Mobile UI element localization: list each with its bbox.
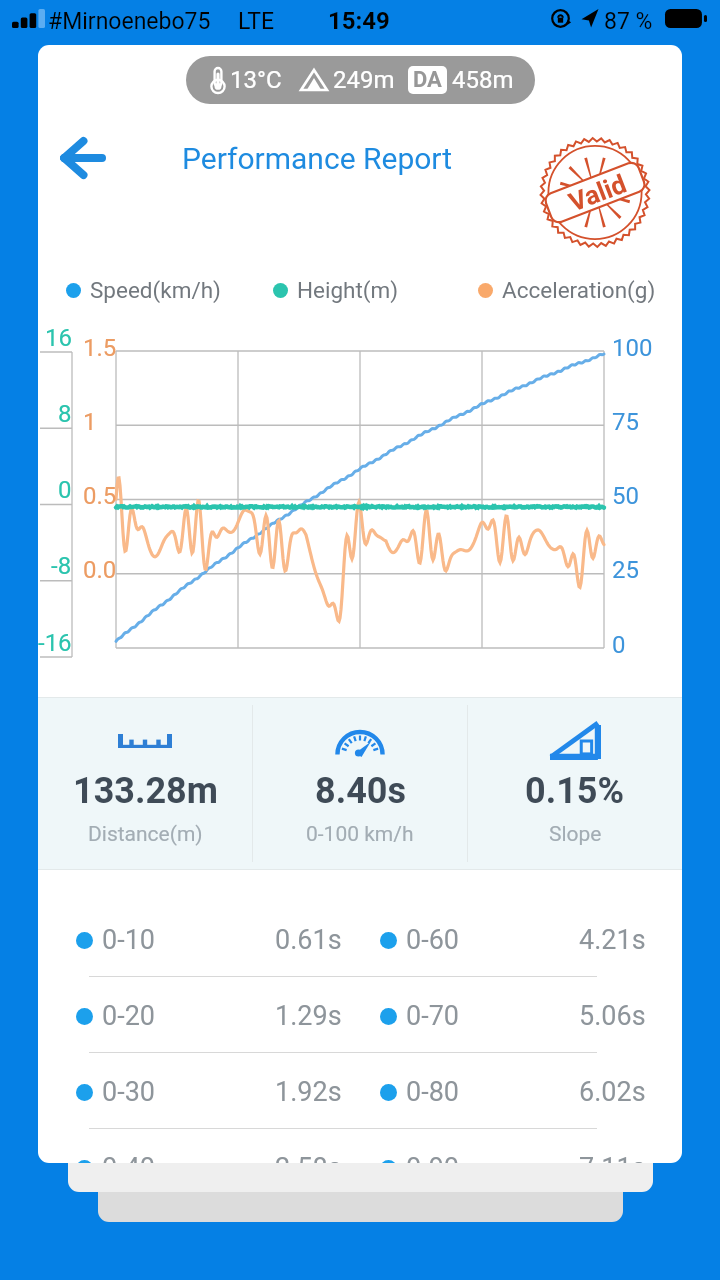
staticText: 13°C [230,66,282,94]
button[interactable]: 0-30 [68,1064,350,1120]
staticText: 0.61s [275,924,342,956]
staticText: 2.58s [275,1152,342,1163]
button[interactable]: 133.28m [38,697,252,870]
staticText: 25 [612,556,639,584]
staticText: 1.5 [83,334,117,362]
staticText: Distance(m) [88,822,203,847]
button[interactable]: 0-60 [372,912,654,968]
staticText: -16 [38,629,72,657]
staticText: DA [413,67,442,93]
staticText: 0-30 [102,1076,155,1108]
staticText: 0-80 [406,1076,459,1108]
button[interactable]: Acceleration(g) [478,275,656,305]
staticText: 75 [612,408,639,436]
button[interactable]: 0-40 [68,1140,350,1163]
button[interactable]: Height(m) [273,275,399,305]
staticText: 249m [333,66,395,94]
button[interactable]: Back [42,128,124,188]
staticText: 0-70 [406,1000,459,1032]
staticText: 1.29s [275,1000,342,1032]
staticText: 5.06s [579,1000,646,1032]
staticText: 0-20 [102,1000,155,1032]
button[interactable]: 0.15% [468,697,682,870]
staticText: 0 [58,476,72,504]
staticText: 0-100 km/h [306,822,414,847]
button[interactable]: 0-90 [372,1140,654,1163]
staticText: LTE [238,8,275,35]
staticText: 0.5 [83,482,117,510]
button[interactable]: Speed(km/h) [66,275,221,305]
staticText: 7.11s [579,1152,646,1163]
staticText: 50 [612,482,639,510]
other: Rotation lock [551,9,570,28]
staticText: 0-10 [102,924,155,956]
staticText: 0.0 [83,556,117,584]
staticText: 0 [612,631,626,659]
staticText: Speed(km/h) [90,277,221,303]
staticText: 1 [83,408,97,436]
button[interactable]: 0-80 [372,1064,654,1120]
staticText: 8.40s [315,770,406,812]
staticText: Performance Report [182,141,453,176]
staticText: 1.92s [275,1076,342,1108]
button[interactable]: 0-20 [68,988,350,1044]
staticText: 458m [452,66,514,94]
staticText: 133.28m [73,770,218,812]
staticText: Valid [565,168,630,218]
staticText: 100 [612,334,653,362]
staticText: #Mirnoenebo75 [48,8,211,35]
staticText: 8 [58,400,72,428]
staticText: 0-90 [406,1152,459,1163]
button[interactable]: 0-10 [68,912,350,968]
staticText: Acceleration(g) [502,277,656,303]
staticText: 0-60 [406,924,459,956]
staticText: 15:49 [328,7,390,35]
staticText: 4.21s [579,924,646,956]
staticText: Height(m) [297,277,399,303]
staticText: 16 [45,324,72,352]
staticText: Slope [549,822,602,847]
staticText: 0.15% [525,770,625,812]
staticText: -8 [51,552,72,580]
staticText: 87 % [604,8,653,35]
staticText: 0-40 [102,1152,155,1163]
button[interactable]: 8.40s [253,697,467,870]
staticText: 6.02s [579,1076,646,1108]
button[interactable]: 0-70 [372,988,654,1044]
